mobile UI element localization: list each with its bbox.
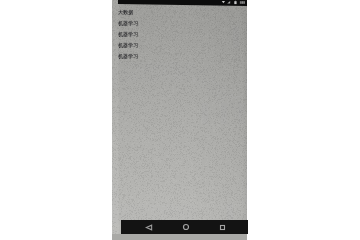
staticText: 机器学习 [118,20,138,26]
button[interactable]: 机器学习 [112,50,247,61]
button[interactable]: 机器学习 [112,28,247,39]
button[interactable]: 大数据 [112,6,247,17]
button[interactable]: 机器学习 [112,39,247,50]
button[interactable]: Recent apps [215,220,229,234]
staticText: 机器学习 [118,31,138,37]
staticText: 机器学习 [118,53,138,59]
staticText: 大数据 [118,9,133,15]
button[interactable]: Back [142,220,156,234]
button[interactable]: Home [179,220,193,234]
staticText: 机器学习 [118,42,138,48]
button[interactable]: 机器学习 [112,17,247,28]
